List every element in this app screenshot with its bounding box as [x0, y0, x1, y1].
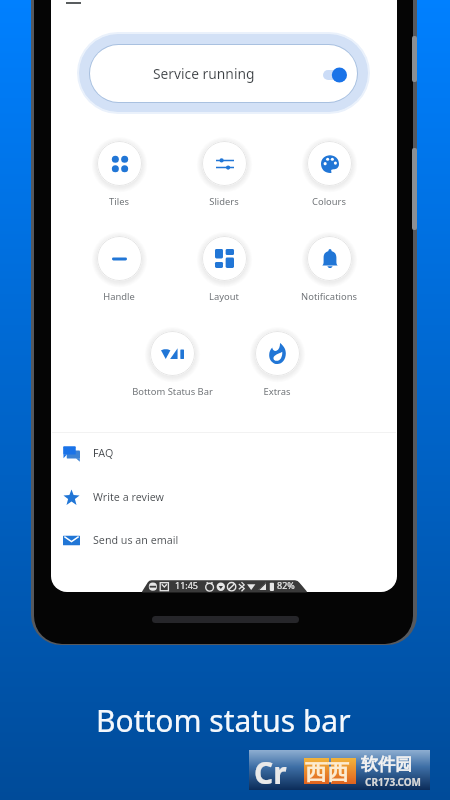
button[interactable]: Colours — [279, 139, 379, 211]
staticText: Write a review — [93, 490, 164, 505]
staticText: Notifications — [301, 290, 357, 303]
staticText: Sliders — [209, 195, 239, 208]
staticText: Extras — [263, 385, 291, 398]
staticText: Colours — [312, 195, 346, 208]
staticText: CR173.COM — [365, 775, 422, 789]
staticText: Bottom Status Bar — [132, 385, 213, 398]
staticText: Layout — [209, 290, 239, 303]
button[interactable]: Extras — [227, 329, 327, 401]
button[interactable]: Collapse — [60, 0, 86, 12]
staticText: 11:45 — [175, 579, 199, 591]
staticText: 西西 — [305, 759, 349, 787]
staticText: 软件园 — [361, 754, 412, 775]
staticText: Bottom status bar — [96, 700, 351, 741]
button[interactable]: Write a review — [52, 476, 396, 518]
button[interactable]: Notifications — [279, 234, 379, 306]
staticText: Handle — [103, 290, 135, 303]
staticText: Send us an email — [93, 533, 179, 548]
button[interactable]: Handle — [69, 234, 169, 306]
staticText: Cr — [254, 752, 287, 792]
button[interactable]: FAQ — [52, 432, 396, 474]
staticText: FAQ — [93, 446, 114, 461]
button[interactable]: Service running — [90, 45, 357, 102]
button[interactable]: Tiles — [69, 139, 169, 211]
staticText: Service running — [153, 64, 255, 83]
button[interactable]: Send us an email — [52, 519, 396, 561]
button[interactable]: Layout — [174, 234, 274, 306]
button[interactable]: Sliders — [174, 139, 274, 211]
staticText: 82% — [277, 579, 295, 591]
staticText: Tiles — [109, 195, 129, 208]
button[interactable]: Bottom Status Bar — [122, 329, 222, 401]
